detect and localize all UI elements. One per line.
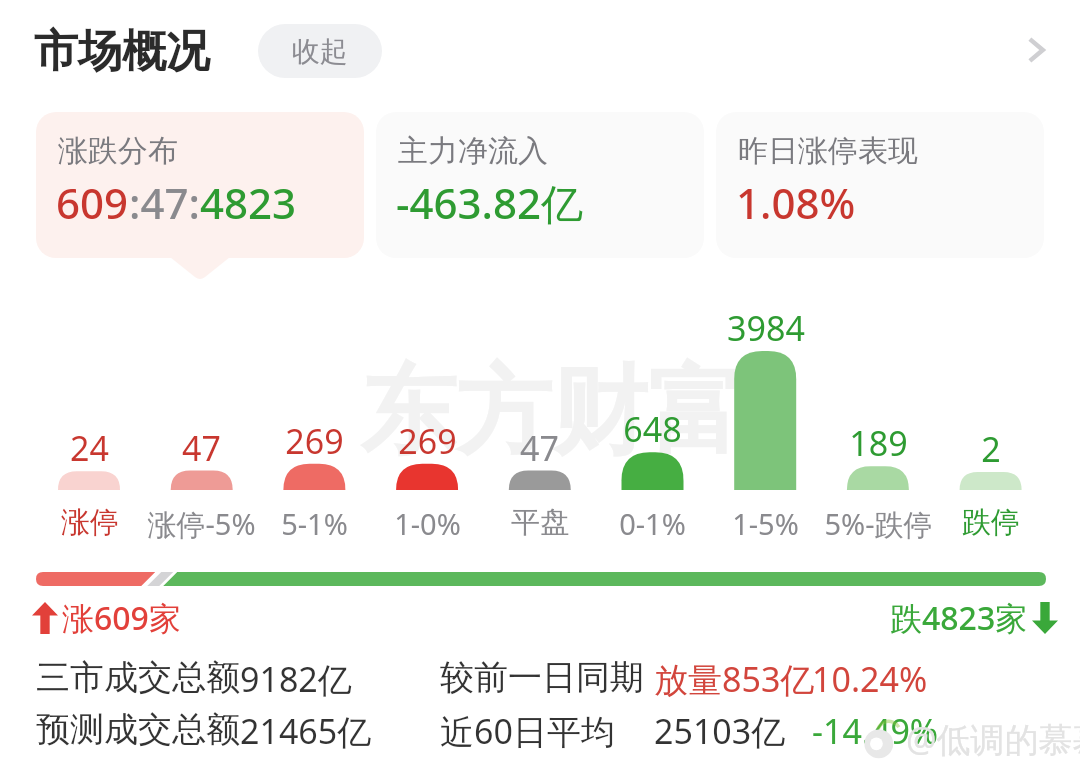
staticText: 648: [623, 406, 682, 452]
staticText: 47: [520, 425, 559, 471]
staticText: -463.82亿: [396, 174, 584, 231]
staticText: 涨跌分布: [58, 132, 178, 170]
button[interactable]: 主力净流入: [376, 112, 704, 258]
button[interactable]: 跌4823家: [890, 596, 1058, 640]
staticText: 4823: [200, 174, 297, 231]
staticText: 10.24%: [812, 656, 928, 702]
staticText: 跌停: [962, 504, 1020, 541]
staticText: 东方财富: [360, 352, 744, 473]
button[interactable]: 涨停: [27, 504, 152, 541]
staticText: 三市成交总额: [36, 656, 240, 699]
staticText: 24: [70, 425, 109, 471]
staticText: 2: [981, 426, 1001, 472]
staticText: 1-0%: [394, 504, 461, 543]
button[interactable]: 5-1%: [252, 504, 377, 543]
staticText: 涨停-5%: [147, 504, 256, 544]
button[interactable]: 收起: [258, 24, 382, 78]
staticText: 0-1%: [619, 504, 686, 543]
staticText: 9182亿: [240, 656, 352, 702]
button[interactable]: 1-0%: [365, 504, 490, 543]
button[interactable]: 5%-跌停: [816, 504, 941, 544]
button[interactable]: 展开市场概况: [1008, 22, 1064, 78]
staticText: 主力净流入: [398, 132, 548, 170]
staticText: 市场概况: [34, 24, 210, 79]
staticText: :47:: [129, 174, 200, 231]
staticText: 平盘: [511, 504, 569, 541]
staticText: 昨日涨停表现: [738, 132, 918, 170]
staticText: 涨停: [61, 504, 119, 541]
staticText: 收起: [292, 34, 348, 69]
staticText: 1-5%: [732, 504, 799, 543]
button[interactable]: 涨跌分布: [36, 112, 364, 258]
staticText: 涨609家: [62, 596, 181, 640]
staticText: 近60日平均: [440, 708, 615, 754]
button[interactable]: 1-5%: [703, 504, 828, 543]
staticText: 189: [849, 420, 908, 466]
staticText: 269: [285, 418, 344, 464]
staticText: 3984: [727, 305, 805, 351]
staticText: 47: [182, 425, 221, 471]
staticText: 较前一日同期: [440, 656, 644, 699]
staticText: 609: [56, 174, 129, 231]
staticText: 21465亿: [240, 708, 372, 754]
staticText: 5-1%: [281, 504, 348, 543]
staticText: 5%-跌停: [824, 504, 933, 544]
button[interactable]: 涨停-5%: [139, 504, 264, 544]
button[interactable]: 昨日涨停表现: [716, 112, 1044, 258]
button[interactable]: 0-1%: [590, 504, 715, 543]
staticText: 25103亿: [654, 708, 786, 754]
staticText: 1.08%: [736, 174, 856, 231]
staticText: 放量853亿: [654, 656, 815, 702]
staticText: -14.49%: [812, 708, 939, 754]
staticText: 预测成交总额: [36, 708, 240, 751]
staticText: @低调的慕慕: [906, 716, 1080, 762]
button[interactable]: 跌停: [928, 504, 1053, 541]
staticText: 跌4823家: [890, 596, 1028, 640]
button[interactable]: 平盘: [477, 504, 602, 541]
staticText: 269: [398, 418, 457, 464]
button[interactable]: 涨609家: [32, 596, 181, 640]
